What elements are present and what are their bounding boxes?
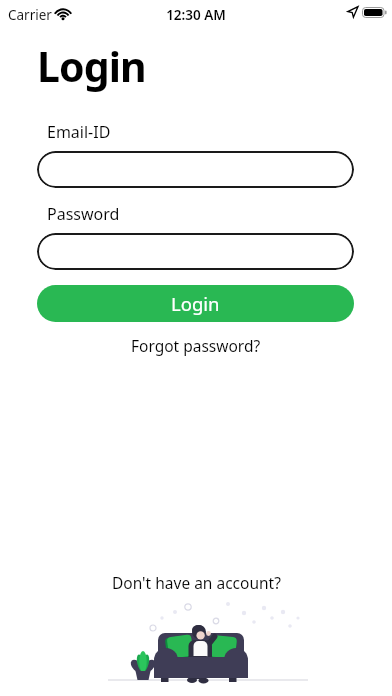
staticText: Email-ID [47,121,111,143]
button[interactable]: Don't have an account? [112,572,281,593]
staticText: Forgot password? [131,335,261,356]
button[interactable]: Login [37,285,354,322]
button[interactable] [37,233,354,270]
staticText: Password [47,203,120,225]
staticText: 12:30 AM [0,6,392,24]
button[interactable]: Forgot password? [131,335,261,356]
staticText: Login [171,291,220,316]
staticText: Carrier [8,6,52,24]
staticText: Don't have an account? [112,572,281,593]
staticText: Login [37,38,146,94]
button[interactable] [37,151,354,188]
